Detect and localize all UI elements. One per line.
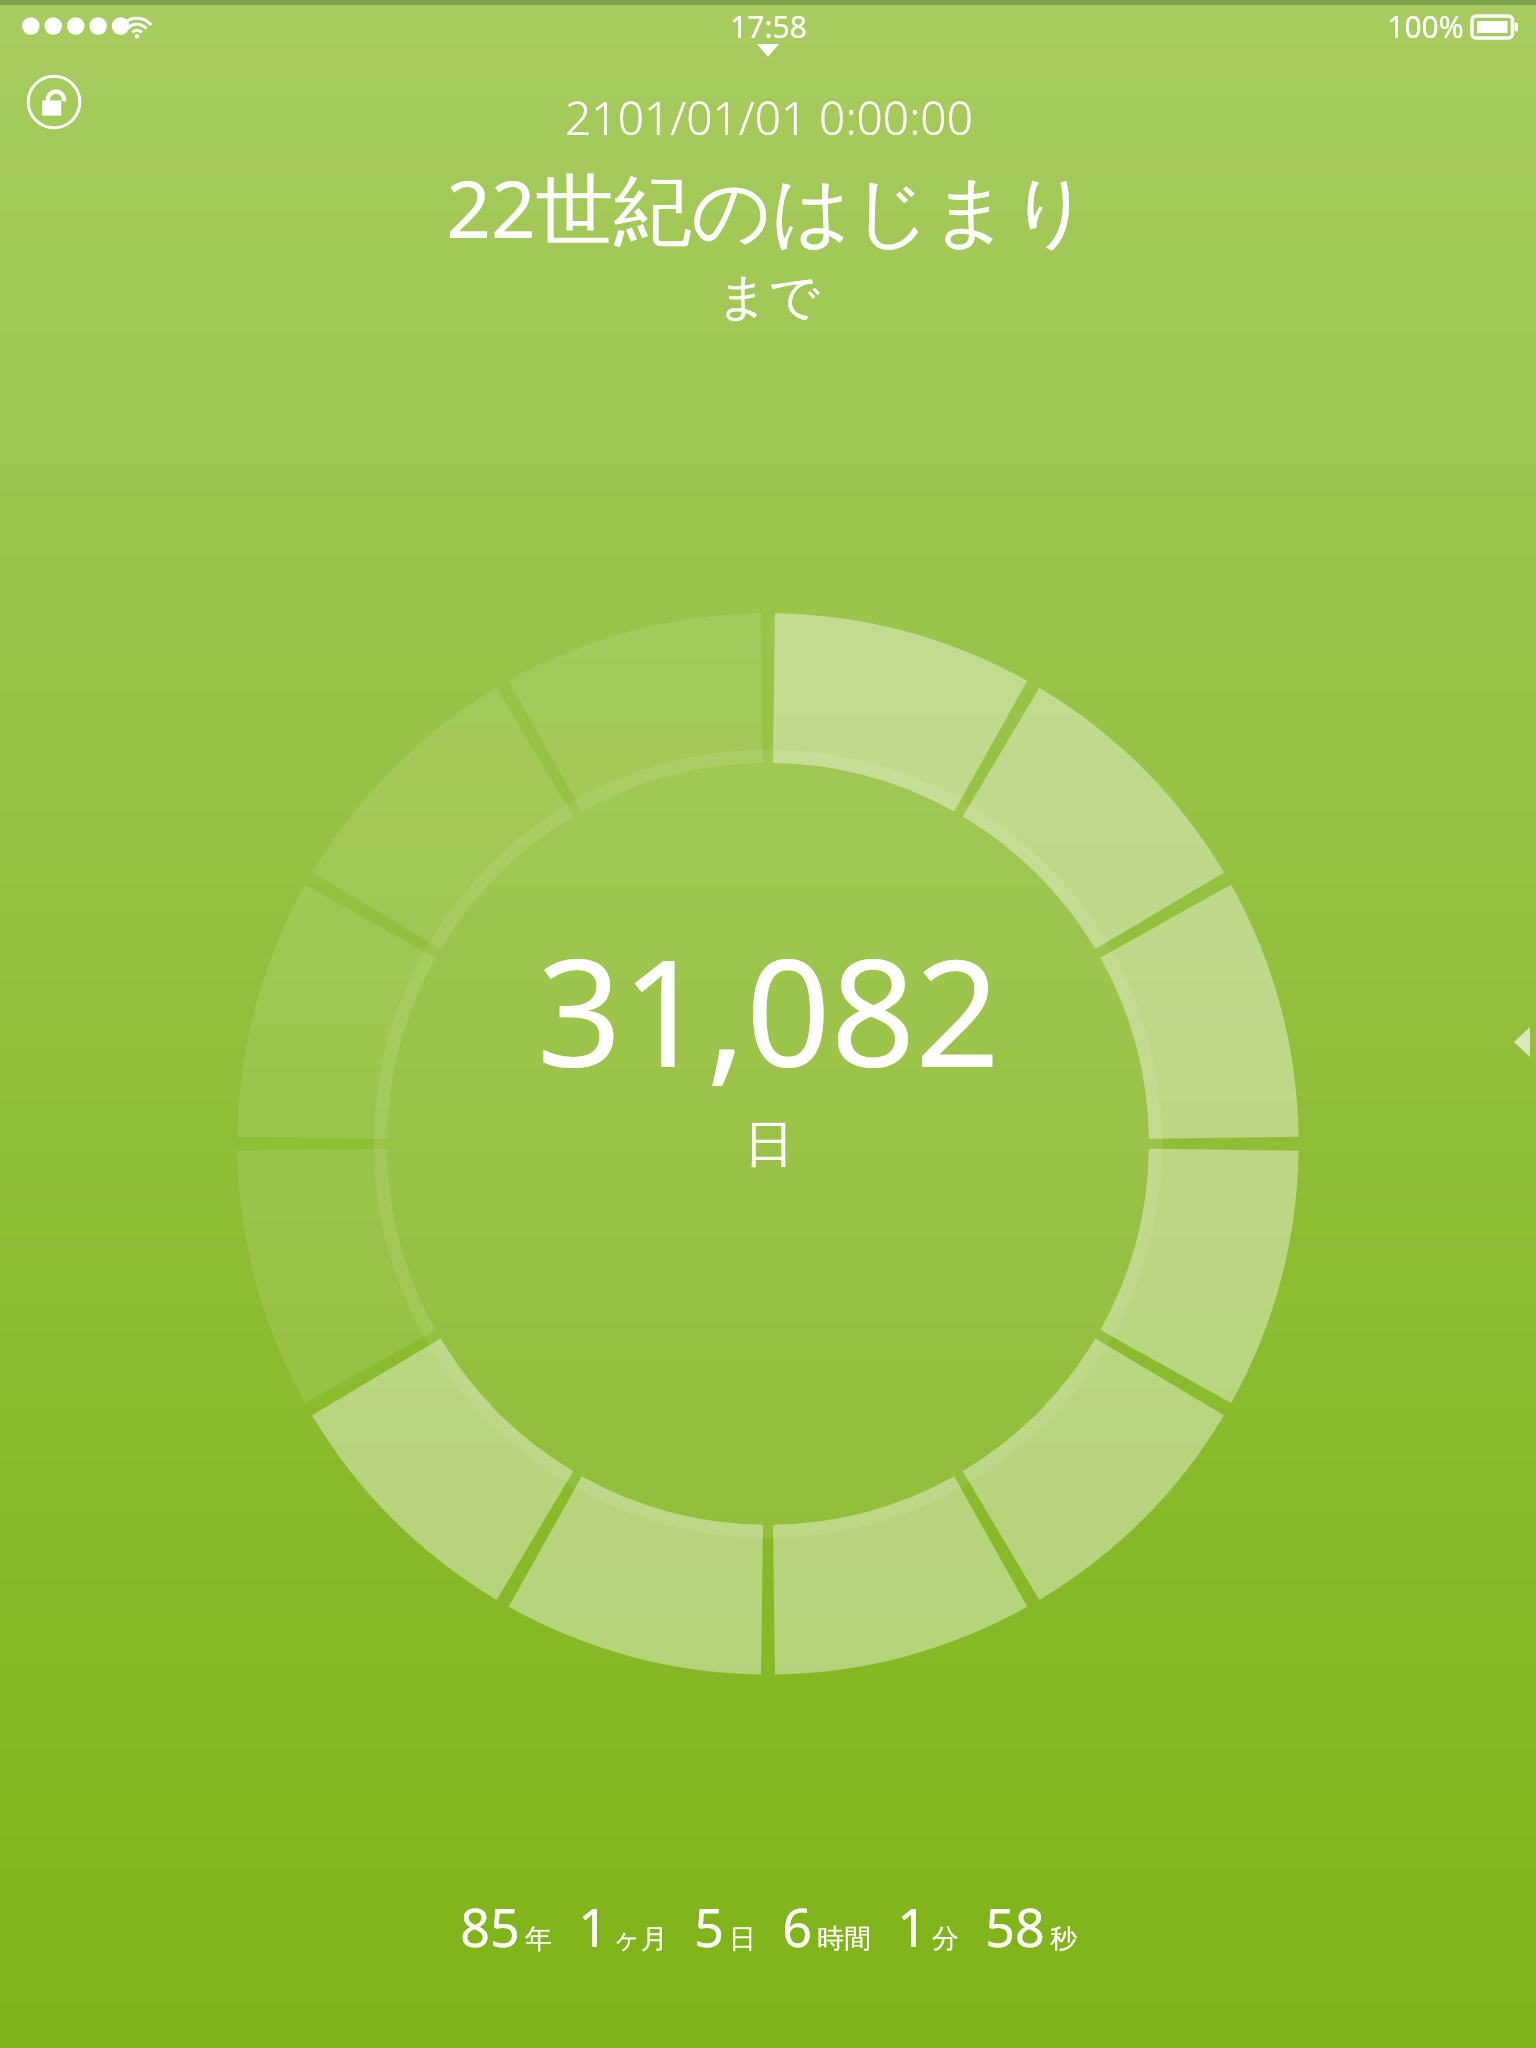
staticText: 22世紀のはじまり bbox=[446, 155, 1091, 262]
staticText: 日 bbox=[744, 1113, 794, 1176]
staticText: 17:58 bbox=[730, 6, 807, 47]
staticText: ヶ月 bbox=[613, 1922, 668, 1956]
button[interactable]: Next bbox=[1508, 1020, 1536, 1064]
staticText: 年 bbox=[525, 1922, 552, 1956]
staticText: 2101/01/01 0:00:00 bbox=[565, 86, 973, 149]
staticText: 1 bbox=[578, 1891, 608, 1962]
staticText: まで bbox=[717, 266, 820, 329]
staticText: 日 bbox=[729, 1922, 756, 1956]
staticText: 31,082 bbox=[537, 909, 1000, 1111]
staticText: 分 bbox=[932, 1922, 959, 1956]
staticText: 5 bbox=[694, 1891, 724, 1962]
staticText: 1 bbox=[897, 1891, 927, 1962]
staticText: 85 bbox=[460, 1891, 520, 1962]
staticText: 時間 bbox=[817, 1922, 871, 1956]
button[interactable]: Unlock bbox=[22, 70, 86, 134]
staticText: 58 bbox=[985, 1891, 1045, 1962]
staticText: 秒 bbox=[1050, 1922, 1077, 1956]
staticText: 6 bbox=[782, 1891, 812, 1962]
staticText: 100% bbox=[1387, 6, 1464, 47]
